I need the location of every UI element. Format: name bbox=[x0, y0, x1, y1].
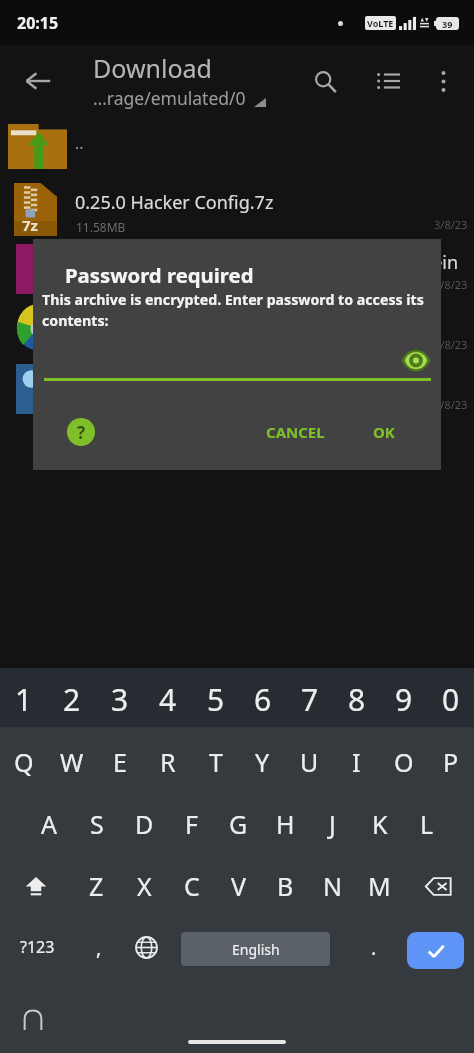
button[interactable]: 6 bbox=[239, 668, 286, 731]
staticText: H bbox=[276, 807, 295, 841]
staticText: Z bbox=[89, 869, 104, 903]
staticText: L bbox=[420, 807, 434, 841]
staticText: O bbox=[394, 745, 414, 779]
button[interactable]: B bbox=[262, 855, 309, 917]
staticText: C bbox=[184, 869, 200, 903]
staticText: S bbox=[90, 807, 104, 841]
staticText: VoLTE bbox=[367, 17, 394, 29]
staticText: 3/8/23 bbox=[434, 397, 468, 412]
button[interactable]: G bbox=[215, 793, 262, 855]
button[interactable]: J bbox=[309, 793, 356, 855]
button[interactable]: H bbox=[262, 793, 309, 855]
staticText: This archive is encrypted. Enter passwor… bbox=[42, 290, 436, 331]
button[interactable]: English bbox=[181, 932, 330, 966]
button[interactable]: Backspace bbox=[403, 855, 474, 917]
button[interactable]: Help bbox=[67, 418, 95, 446]
button[interactable]: 3 bbox=[96, 668, 144, 731]
staticText: 7 bbox=[301, 679, 319, 720]
button[interactable]: ?123 bbox=[6, 917, 68, 977]
button[interactable]: U bbox=[286, 731, 333, 793]
button[interactable]: 9 bbox=[380, 668, 427, 731]
staticText: Q bbox=[14, 745, 34, 779]
button[interactable]: A bbox=[25, 793, 73, 855]
button[interactable]: Shift bbox=[0, 855, 72, 917]
button[interactable]: 2 bbox=[48, 668, 96, 731]
staticText: R bbox=[160, 745, 176, 779]
button[interactable]: X bbox=[120, 855, 168, 917]
staticText: 1 bbox=[15, 679, 33, 720]
staticText: English bbox=[232, 940, 280, 959]
button[interactable]: Back bbox=[14, 57, 62, 105]
button[interactable]: , bbox=[75, 917, 123, 977]
staticText: 2 bbox=[63, 679, 81, 720]
button[interactable]: 5 bbox=[192, 668, 239, 731]
button[interactable]: V bbox=[215, 855, 262, 917]
staticText: 86.27MB bbox=[76, 279, 126, 295]
staticText: 7z bbox=[22, 215, 38, 235]
staticText: 3/8/23 bbox=[434, 277, 468, 292]
button[interactable]: Back bbox=[16, 1003, 50, 1037]
staticText: W bbox=[60, 745, 84, 779]
button[interactable]: 8 bbox=[333, 668, 380, 731]
button[interactable]: P bbox=[427, 731, 474, 793]
button[interactable]: L bbox=[403, 793, 450, 855]
button[interactable]: OK bbox=[361, 414, 407, 450]
button[interactable]: T bbox=[192, 731, 239, 793]
button[interactable]: F bbox=[168, 793, 215, 855]
button[interactable]: O bbox=[380, 731, 427, 793]
button[interactable]: I bbox=[333, 731, 380, 793]
staticText: OK bbox=[373, 422, 395, 442]
button[interactable]: 7z bbox=[0, 178, 474, 238]
staticText: photo_2023-03-08.png bbox=[75, 370, 474, 395]
staticText: 9 bbox=[395, 679, 413, 720]
staticText: 6 bbox=[254, 679, 272, 720]
button[interactable]: photo_2023-03-08.png bbox=[0, 358, 474, 418]
staticText: ?123 bbox=[20, 936, 55, 958]
button[interactable]: 0.24.1 Hacker Config Tools Kit Archive P… bbox=[0, 238, 474, 298]
button[interactable]: D bbox=[121, 793, 168, 855]
staticText: 8 bbox=[348, 679, 366, 720]
button[interactable]: 7 bbox=[286, 668, 333, 731]
staticText: 3/8/23 bbox=[434, 337, 468, 352]
staticText: V bbox=[231, 869, 247, 903]
button[interactable]: K bbox=[356, 793, 403, 855]
button[interactable]: Z bbox=[72, 855, 120, 917]
staticText: ? bbox=[77, 421, 86, 444]
staticText: N bbox=[323, 869, 343, 903]
button[interactable]: CANCEL bbox=[254, 414, 337, 450]
button[interactable]: N bbox=[309, 855, 356, 917]
staticText: Download bbox=[93, 51, 212, 85]
staticText: K bbox=[372, 807, 388, 841]
staticText: J bbox=[329, 807, 336, 841]
button[interactable]: Search bbox=[301, 57, 349, 105]
button[interactable]: 1 bbox=[0, 668, 48, 731]
button[interactable]: . bbox=[352, 917, 396, 977]
button[interactable]: C bbox=[168, 855, 215, 917]
button[interactable]: Y bbox=[239, 731, 286, 793]
button[interactable]: LetsGetItStarted.mp3 bbox=[0, 298, 474, 358]
staticText: Y bbox=[255, 745, 270, 779]
button[interactable]: 4 bbox=[144, 668, 192, 731]
button[interactable]: View mode bbox=[364, 57, 412, 105]
button[interactable]: R bbox=[144, 731, 192, 793]
staticText: 0 bbox=[442, 679, 460, 720]
button[interactable]: Enter bbox=[407, 932, 464, 969]
button[interactable]: M bbox=[356, 855, 403, 917]
staticText: I bbox=[352, 745, 361, 779]
staticText: 3 bbox=[111, 679, 129, 720]
staticText: A bbox=[41, 807, 57, 841]
staticText: T bbox=[209, 745, 223, 779]
button[interactable]: Q bbox=[0, 731, 48, 793]
button[interactable]: 0 bbox=[427, 668, 474, 731]
button[interactable]: S bbox=[73, 793, 121, 855]
staticText: 5 bbox=[207, 679, 225, 720]
button[interactable]: W bbox=[48, 731, 96, 793]
button[interactable]: Change language bbox=[122, 917, 170, 977]
staticText: , bbox=[96, 934, 102, 961]
button[interactable]: E bbox=[96, 731, 144, 793]
button[interactable]: Show password bbox=[399, 343, 433, 377]
staticText: F bbox=[185, 807, 198, 841]
button[interactable]: More options bbox=[419, 57, 467, 105]
button[interactable]: .. bbox=[0, 116, 474, 178]
